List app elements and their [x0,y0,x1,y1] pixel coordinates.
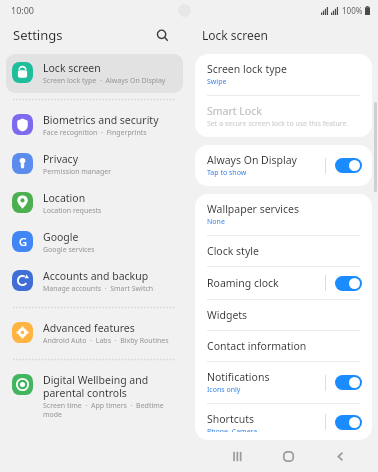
button[interactable]: Contact information [195,331,372,361]
staticText: Tap to show [207,168,247,178]
staticText: Google [43,230,79,244]
button[interactable]: Smart Lock [195,96,372,137]
staticText: Swipe [207,77,227,87]
button[interactable]: Roaming clock [195,267,372,299]
staticText: Location requests [43,206,102,216]
staticText: G [19,234,27,249]
staticText: Contact information [207,339,307,353]
button[interactable]: Screen lock type [195,54,372,95]
staticText: Shortcuts [207,412,255,426]
button[interactable]: Home [274,442,302,470]
button[interactable]: Location [6,184,183,223]
staticText: Clock style [207,244,259,258]
staticText: Screen time · App timers · Bedtime mode [43,401,175,419]
button[interactable]: Recents [222,442,250,470]
staticText: Manage accounts · Smart Switch [43,284,154,294]
staticText: Phone, Camera [207,427,258,432]
staticText: Always On Display [207,153,297,167]
staticText: Advanced features [43,321,135,335]
staticText: Screen lock type [207,62,287,76]
button[interactable]: Advanced features [6,314,183,353]
button[interactable]: Lock screen [6,54,183,93]
button[interactable]: Shortcuts [195,404,372,440]
staticText: Roaming clock [207,276,279,290]
staticText: Google services [43,245,95,255]
staticText: 100% [342,5,363,16]
button[interactable]: Accounts and backup [6,262,183,301]
button[interactable]: Biometrics and security [6,106,183,145]
staticText: Smart Lock [207,104,262,118]
staticText: None [207,217,225,227]
button[interactable]: G [6,223,183,262]
button[interactable]: Toggle, on [335,276,362,291]
button[interactable]: Always On Display [195,145,372,186]
button[interactable]: Toggle, on [335,415,362,430]
button[interactable]: Wallpaper services [195,194,372,235]
staticText: Lock screen [43,61,101,75]
staticText: Privacy [43,152,79,166]
staticText: Biometrics and security [43,113,159,127]
staticText: Settings [13,26,63,44]
staticText: Icons only [207,385,241,395]
button[interactable]: Widgets [195,300,372,330]
button[interactable]: Digital Wellbeing and parental controls [6,366,183,426]
staticText: 10:00 [11,4,35,16]
staticText: Notifications [207,370,270,384]
staticText: Face recognition · Fingerprints [43,128,147,138]
staticText: Digital Wellbeing and parental controls [43,373,175,400]
button[interactable]: Toggle, on [335,375,362,390]
staticText: Set a secure screen lock to use this fea… [207,119,349,129]
button[interactable]: Toggle, on [335,158,362,173]
staticText: Wallpaper services [207,202,299,216]
button[interactable]: Search [151,24,173,46]
button[interactable]: Privacy [6,145,183,184]
staticText: Location [43,191,86,205]
staticText: Permission manager [43,167,112,177]
button[interactable]: Clock style [195,236,372,266]
staticText: Widgets [207,308,248,322]
staticText: Lock screen [202,27,269,43]
staticText: Android Auto · Labs · Bixby Routines [43,336,169,346]
button[interactable]: Back [326,442,354,470]
staticText: Accounts and backup [43,269,149,283]
button[interactable]: Notifications [195,362,372,403]
staticText: Screen lock type · Always On Display [43,76,166,86]
